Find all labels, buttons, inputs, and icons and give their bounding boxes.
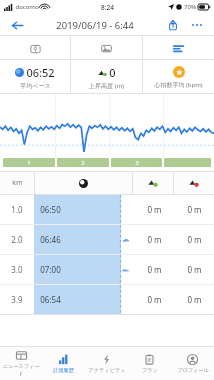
staticText: 3.9 xyxy=(11,294,23,305)
staticText: 3.0 xyxy=(11,264,23,275)
staticText: プロフィール xyxy=(177,367,209,374)
staticText: 2.0 xyxy=(11,234,23,245)
staticText: プラン xyxy=(142,367,158,374)
staticText: 0 m xyxy=(147,234,162,245)
staticText: 0 m xyxy=(187,294,202,305)
staticText: 2019/06/19 - 6:44 xyxy=(56,19,134,32)
staticText: 8:24 xyxy=(101,3,114,12)
button[interactable]: Share xyxy=(164,16,182,34)
staticText: 0 m xyxy=(147,294,162,305)
staticText: 0 m xyxy=(147,204,162,215)
staticText: 0 m xyxy=(187,264,202,275)
button[interactable]: Back xyxy=(8,16,26,34)
staticText: 0 m xyxy=(147,264,162,275)
staticText: 2 xyxy=(81,159,85,167)
staticText: docomo xyxy=(15,3,39,11)
staticText: 0 m xyxy=(187,234,202,245)
button[interactable]: 0 xyxy=(71,60,142,94)
button[interactable]: 06:52 xyxy=(0,60,70,94)
button[interactable]: 2.0 xyxy=(0,225,214,254)
staticText: 0 m xyxy=(187,204,202,215)
staticText: 06:50 xyxy=(40,204,61,215)
button[interactable]: アクティビティ xyxy=(85,347,128,380)
staticText: 06:52 xyxy=(26,65,55,80)
staticText: 0 xyxy=(109,65,116,80)
staticText: 3 xyxy=(135,159,139,167)
staticText: 1 xyxy=(27,159,31,167)
staticText: 上昇高度 (m) xyxy=(89,82,124,90)
staticText: アクティビティ xyxy=(88,367,126,374)
button[interactable]: More options xyxy=(188,16,206,34)
staticText: 07:00 xyxy=(40,264,61,275)
staticText: 平均ペース xyxy=(20,82,51,90)
button[interactable]: 1.0 xyxy=(0,195,214,224)
staticText: 06:46 xyxy=(40,234,61,245)
button[interactable]: 3.9 xyxy=(0,285,214,314)
button[interactable]: 計測履歴 xyxy=(42,347,85,380)
button[interactable]: プラン xyxy=(128,347,171,380)
staticText: 心拍数平均 (bpm) xyxy=(154,81,203,89)
button[interactable]: ニュースフィード xyxy=(0,347,42,380)
staticText: km xyxy=(12,178,23,188)
staticText: 06:54 xyxy=(40,294,61,305)
staticText: ニュースフィード xyxy=(0,363,42,377)
button[interactable]: Map xyxy=(0,36,70,60)
staticText: 70% xyxy=(184,3,196,11)
button[interactable]: 3.0 xyxy=(0,255,214,284)
staticText: 1.0 xyxy=(11,204,23,215)
staticText: 計測履歴 xyxy=(53,367,74,374)
button[interactable]: プロフィール xyxy=(171,347,214,380)
button[interactable]: 心拍数平均 (bpm) xyxy=(143,60,214,94)
button[interactable]: Photos xyxy=(71,36,142,60)
button[interactable]: Splits xyxy=(143,36,214,60)
